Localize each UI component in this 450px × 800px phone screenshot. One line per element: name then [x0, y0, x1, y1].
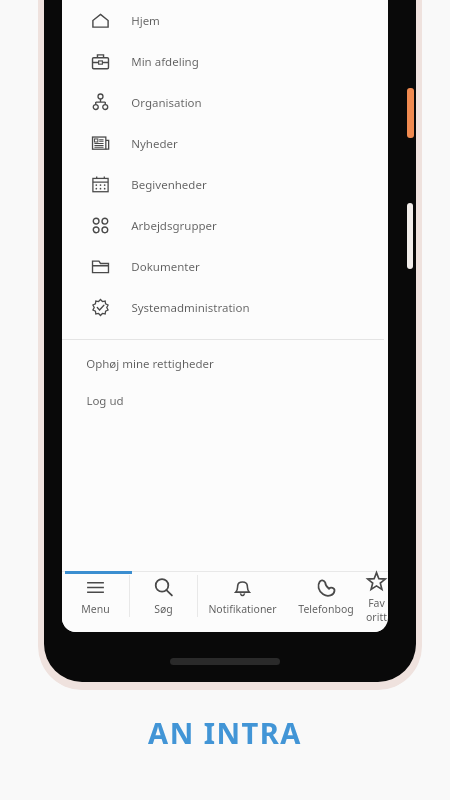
staticText: Telefonbog [298, 602, 354, 616]
staticText: Nyheder [131, 136, 178, 152]
button[interactable]: Søg [130, 571, 197, 621]
button[interactable]: Hjem [62, 0, 384, 41]
button[interactable]: Telefonbog [287, 571, 365, 621]
other: Hjem [91, 11, 110, 30]
staticText: Dokumenter [131, 259, 200, 275]
button[interactable]: Min afdeling [62, 41, 384, 82]
staticText: Systemadministration [131, 300, 250, 316]
staticText: Favoritter [365, 596, 388, 621]
other: Telefonbog [316, 577, 337, 598]
button[interactable]: Arbejdsgrupper [62, 205, 384, 246]
staticText: Min afdeling [131, 54, 199, 70]
other: Arbejdsgrupper [91, 216, 110, 235]
staticText: Ophøj mine rettigheder [86, 356, 214, 372]
staticText: Søg [154, 602, 173, 616]
other: Systemadministration [91, 298, 110, 317]
staticText: Hjem [131, 13, 160, 29]
staticText: AN INTRA [148, 713, 302, 752]
other: Notifikationer [232, 577, 253, 598]
other: Dokumenter [91, 257, 110, 276]
button[interactable]: Ophøj mine rettigheder [62, 354, 384, 374]
other: Favoritter [366, 571, 387, 592]
button[interactable]: Notifikationer [198, 571, 287, 621]
other: Begivenheder [91, 175, 110, 194]
staticText: Arbejdsgrupper [131, 218, 217, 234]
button[interactable]: Favoritter [365, 571, 388, 621]
staticText: Organisation [131, 95, 202, 111]
button[interactable]: Systemadministration [62, 287, 384, 328]
other: Menu [85, 577, 106, 598]
staticText: Log ud [86, 393, 124, 409]
other: Min afdeling [91, 52, 110, 71]
button[interactable]: Organisation [62, 82, 384, 123]
staticText: Notifikationer [208, 602, 277, 616]
button[interactable]: Nyheder [62, 123, 384, 164]
other: Nyheder [91, 134, 110, 153]
button[interactable]: Menu [62, 571, 129, 621]
staticText: Menu [81, 602, 110, 616]
button[interactable]: Dokumenter [62, 246, 384, 287]
other: Organisation [91, 93, 110, 112]
button[interactable]: Log ud [62, 391, 384, 411]
staticText: Begivenheder [131, 177, 207, 193]
button[interactable]: Begivenheder [62, 164, 384, 205]
other: Søg [153, 577, 174, 598]
